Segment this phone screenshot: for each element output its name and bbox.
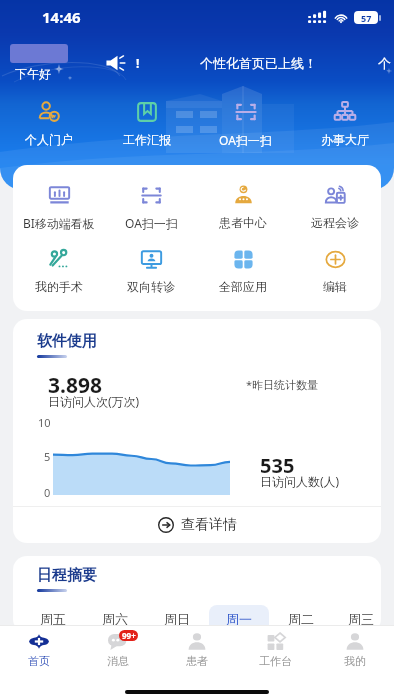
button[interactable]: 编辑 (289, 248, 381, 294)
staticText: 下午好 (15, 66, 51, 81)
button[interactable]: 周一 (208, 605, 270, 633)
button[interactable]: 首页 (0, 626, 78, 674)
staticText: OA扫一扫 (219, 132, 272, 147)
staticText: 个人门户 (25, 132, 73, 147)
staticText: 0 (44, 485, 51, 500)
staticText: 日访问人数(人) (260, 473, 340, 489)
staticText: 首页 (28, 654, 50, 668)
staticText: 个 (378, 55, 391, 71)
button[interactable]: 全部应用 (197, 248, 289, 294)
staticText: 周六 (102, 611, 128, 627)
staticText: OA扫一扫 (125, 215, 178, 231)
staticText: 我的手术 (35, 279, 83, 294)
staticText: 535 (260, 452, 295, 479)
button[interactable]: 工作汇报 (98, 95, 196, 147)
staticText: BI移动端看板 (23, 215, 95, 231)
staticText: 我的 (344, 654, 366, 668)
staticText: 周二 (288, 611, 314, 627)
staticText: 全部应用 (219, 279, 267, 294)
staticText: 日访问人次(万次) (48, 393, 140, 409)
staticText: 软件使用 (37, 332, 97, 351)
button[interactable]: OA扫一扫 (196, 95, 295, 147)
staticText: 10 (38, 415, 51, 430)
staticText: 患者中心 (219, 215, 267, 230)
staticText: 查看详情 (181, 516, 237, 534)
staticText: *昨日统计数量 (246, 377, 319, 392)
button[interactable]: 工作台 (236, 626, 315, 674)
staticText: 3.898 (48, 371, 102, 400)
staticText: 双向转诊 (127, 279, 175, 294)
other: Announcement (106, 55, 129, 71)
staticText: 周一 (226, 611, 252, 627)
button[interactable]: Announcement (106, 52, 391, 74)
staticText: 99+ (122, 630, 136, 641)
staticText: 57 (361, 12, 372, 24)
staticText: 14:46 (42, 7, 81, 27)
button[interactable]: 99+ (78, 626, 157, 674)
staticText: 周五 (40, 611, 66, 627)
button[interactable]: 双向转诊 (105, 248, 197, 294)
staticText: 日程摘要 (37, 566, 97, 585)
button[interactable]: 周日 (146, 605, 208, 633)
staticText: 周三 (348, 611, 374, 627)
staticText: 工作台 (259, 654, 292, 668)
button[interactable]: 周二 (270, 605, 332, 633)
button[interactable]: BI移动端看板 (13, 184, 105, 231)
staticText: 办事大厅 (321, 132, 369, 147)
staticText: 编辑 (323, 279, 347, 294)
button[interactable]: 患者中心 (197, 184, 289, 230)
staticText: 远程会诊 (311, 215, 359, 230)
button[interactable]: 个人门户 (0, 95, 98, 147)
button[interactable]: 我的 (315, 626, 394, 674)
button[interactable]: 周五 (22, 605, 84, 633)
button[interactable]: 周六 (84, 605, 146, 633)
button[interactable]: 远程会诊 (289, 184, 381, 230)
staticText: 消息 (107, 654, 129, 668)
button[interactable]: 周三 (332, 605, 381, 633)
staticText: 个性化首页已上线！ (200, 55, 317, 71)
button[interactable]: 办事大厅 (295, 95, 394, 147)
staticText: 患者 (186, 654, 208, 668)
staticText: 5 (44, 449, 51, 464)
staticText: 周日 (164, 611, 190, 627)
button[interactable]: OA扫一扫 (105, 184, 197, 231)
staticText: ! (136, 55, 140, 71)
staticText: 工作汇报 (123, 132, 171, 147)
button[interactable]: 我的手术 (13, 248, 105, 294)
button[interactable]: 查看详情 (13, 507, 381, 542)
button[interactable]: 患者 (157, 626, 236, 674)
